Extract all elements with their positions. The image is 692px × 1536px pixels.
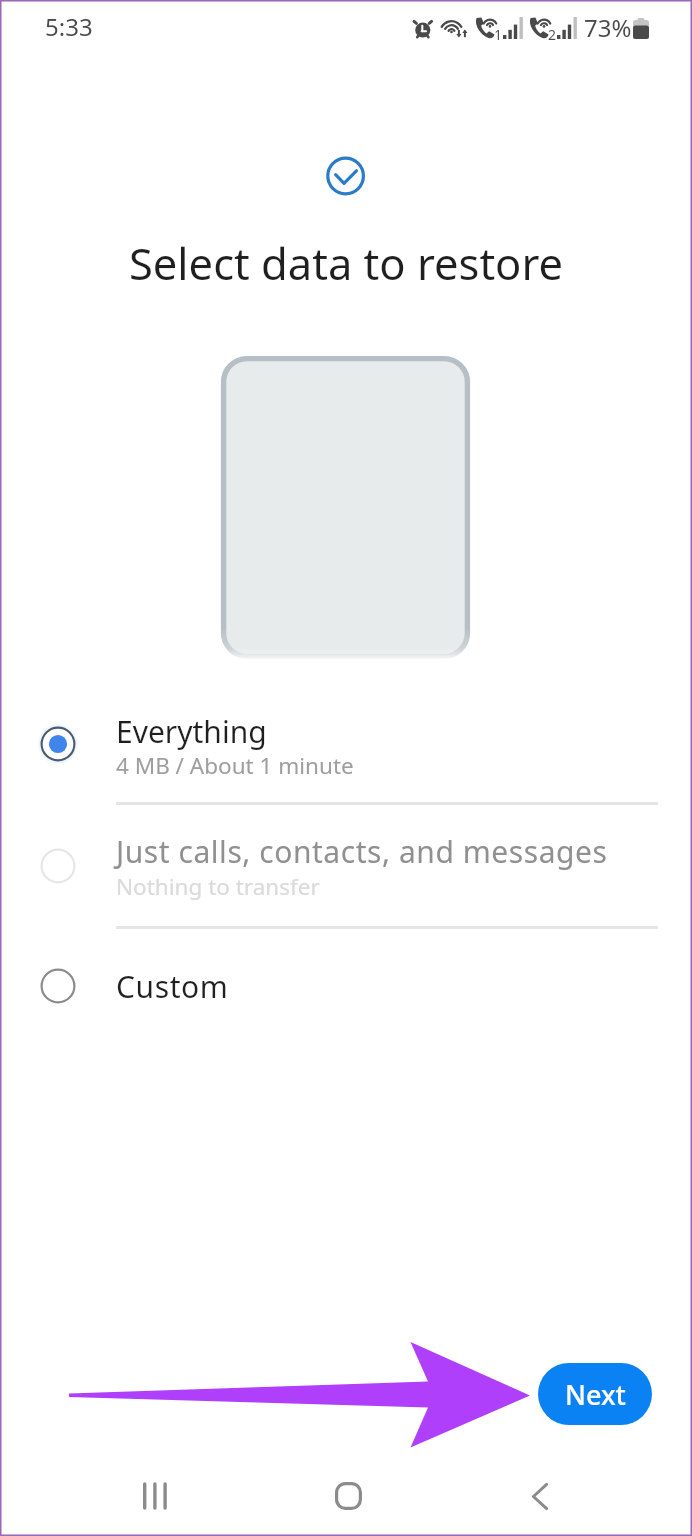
button[interactable]: Custom	[0, 940, 692, 1032]
staticText: 2	[548, 25, 557, 44]
button[interactable]: Recent apps	[111, 1452, 199, 1536]
staticText: Nothing to transfer	[116, 871, 320, 902]
button[interactable]: Home	[304, 1452, 392, 1536]
staticText: Next	[565, 1376, 626, 1413]
button[interactable]: Everything	[0, 698, 692, 790]
staticText: Just calls, contacts, and messages	[116, 831, 608, 872]
staticText: 1	[494, 25, 503, 44]
button[interactable]: Just calls, contacts, and messages	[0, 820, 692, 912]
staticText: Everything	[116, 711, 267, 752]
staticText: 5:33	[45, 10, 93, 43]
staticText: Custom	[116, 966, 229, 1007]
staticText: 73%	[584, 11, 632, 44]
button[interactable]: Next	[538, 1363, 652, 1425]
staticText: 4 MB / About 1 minute	[116, 750, 354, 781]
button[interactable]: Back	[496, 1452, 584, 1536]
staticText: Select data to restore	[0, 233, 692, 292]
